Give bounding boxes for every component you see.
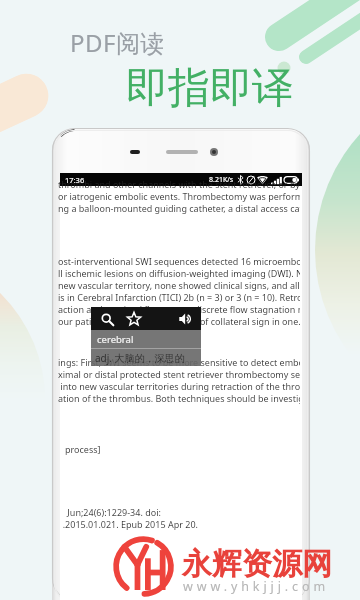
staticText: .2015.01.021. Epub 2015 Apr 20. xyxy=(58,518,198,530)
button[interactable]: Search xyxy=(97,309,117,329)
staticText: ost-interventional SWI sequences detecte… xyxy=(58,255,300,267)
button[interactable]: Pronounce xyxy=(176,309,196,329)
staticText: 即指即译 xyxy=(126,62,294,115)
button[interactable]: Favorite xyxy=(124,309,144,329)
staticText: action and proximal flow arrest, discret… xyxy=(58,303,300,315)
staticText: or iatrogenic embolic events. Thrombecto… xyxy=(58,190,300,202)
staticText: is in Cerebral Infarction (TICI) 2b (n =… xyxy=(58,291,300,303)
staticText: ings: First, SWI seems to be more sensit… xyxy=(58,356,300,368)
staticText: process] xyxy=(58,443,101,455)
staticText: our patients, as well as a reversal of c… xyxy=(58,315,300,327)
staticText: 永辉资源网 xyxy=(182,545,332,583)
staticText: into new vascular territories during ret… xyxy=(58,380,300,392)
staticText: PDF阅读 xyxy=(70,26,165,59)
staticText: 8.21K/s xyxy=(209,175,234,185)
staticText: new vascular territory, none showed clin… xyxy=(58,279,300,291)
staticText: ng a balloon-mounted guiding catheter, a… xyxy=(58,202,300,214)
staticText: adj. 大脑的，深思的 xyxy=(95,351,185,365)
staticText: ximal or distal protected stent retrieve… xyxy=(58,368,300,380)
staticText: www.yhkjjj.com xyxy=(183,578,329,595)
staticText: ll ischemic lesions on diffusion-weighte… xyxy=(58,267,300,279)
staticText: ation of the thrombus. Both techniques s… xyxy=(58,392,300,404)
staticText: cerebral xyxy=(97,333,134,346)
staticText: Jun;24(6):1229-34. doi: xyxy=(58,506,161,518)
staticText: 17:36 xyxy=(65,175,85,185)
staticText: thrombi and other channels with the sten… xyxy=(58,178,300,190)
